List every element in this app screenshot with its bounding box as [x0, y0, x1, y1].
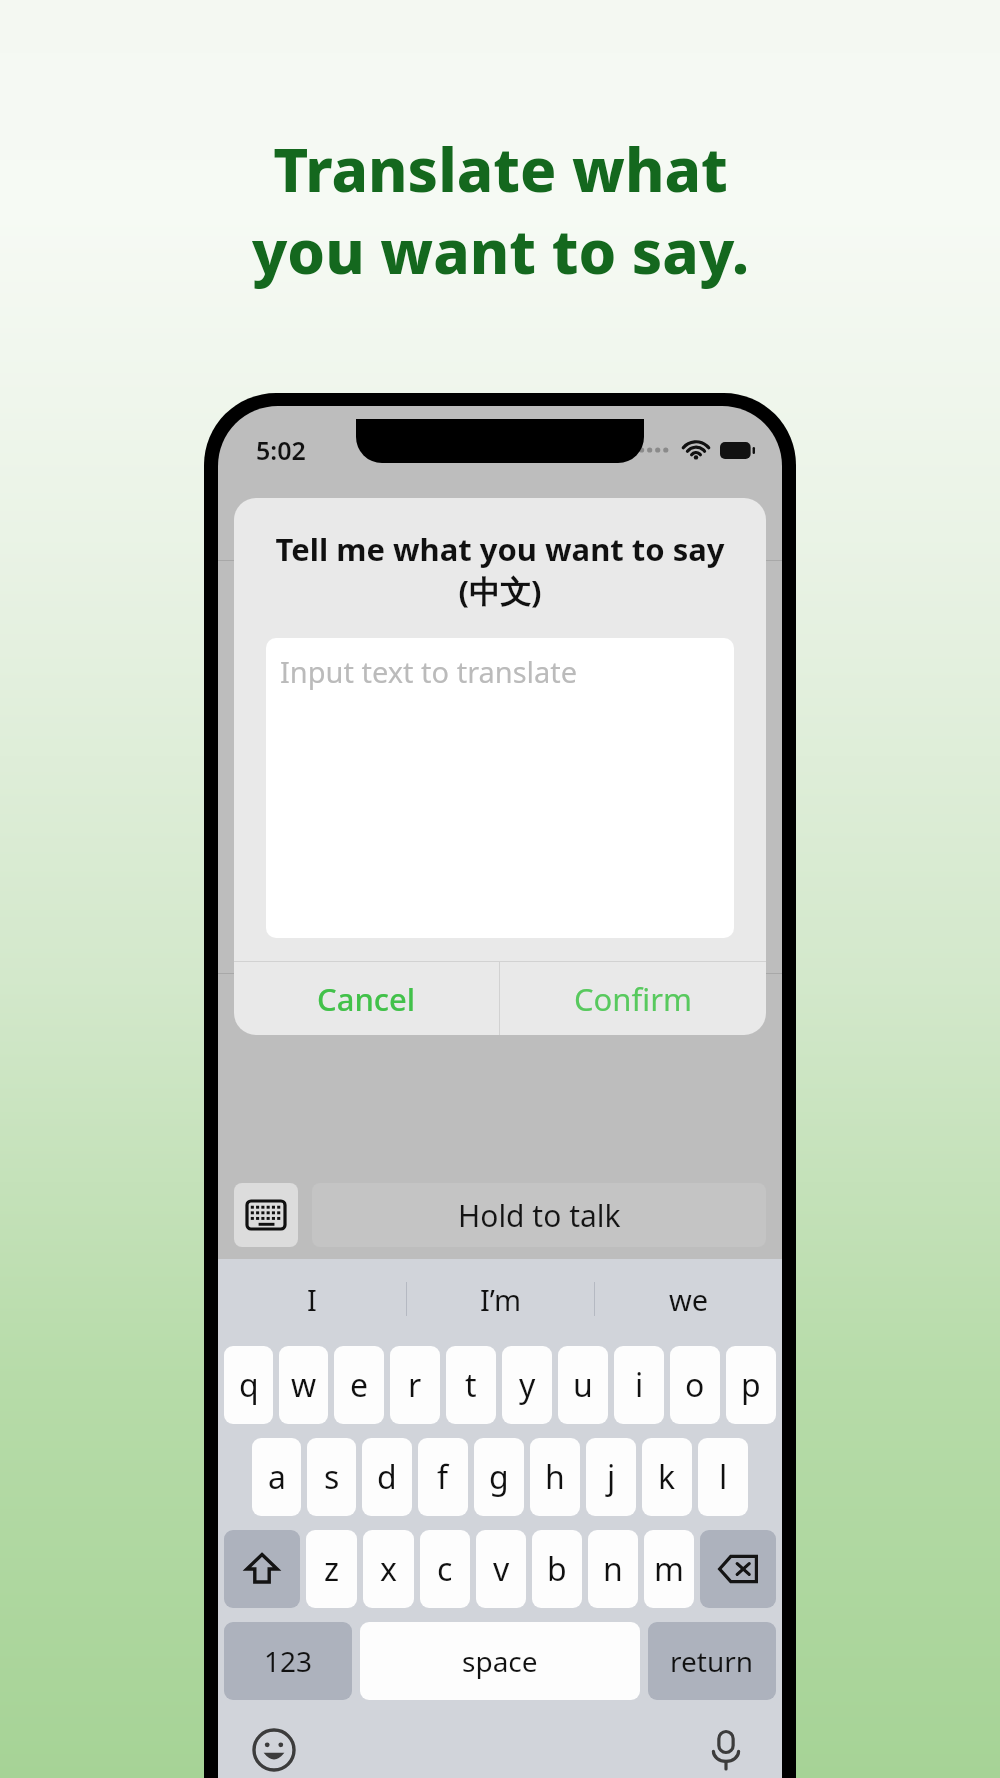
button[interactable]: v	[476, 1530, 526, 1608]
button[interactable]: Input text to translate	[266, 638, 734, 938]
staticText: 5:02	[256, 433, 306, 467]
staticText: return	[670, 1642, 754, 1680]
button[interactable]: m	[644, 1530, 694, 1608]
staticText: English	[262, 612, 361, 651]
button[interactable]: u	[558, 1346, 608, 1424]
button[interactable]: I’m	[407, 1259, 594, 1339]
button[interactable]: b	[532, 1530, 582, 1608]
staticText: c	[437, 1547, 453, 1591]
button[interactable]: f	[418, 1438, 468, 1516]
staticText: y	[519, 1363, 536, 1407]
button[interactable]: j	[586, 1438, 636, 1516]
staticText: m	[654, 1547, 684, 1591]
button[interactable]: n	[588, 1530, 638, 1608]
staticText: n	[603, 1547, 623, 1591]
button[interactable]: return	[648, 1622, 776, 1700]
button[interactable]: x	[363, 1530, 414, 1608]
staticText: Tell me what you want to say (中文)	[252, 528, 748, 612]
button[interactable]: g	[474, 1438, 524, 1516]
button[interactable]: l	[698, 1438, 748, 1516]
button[interactable]: d	[362, 1438, 412, 1516]
button[interactable]: y	[502, 1346, 552, 1424]
staticText: space	[462, 1642, 538, 1680]
staticText: e	[350, 1363, 369, 1407]
button[interactable]: Backspace	[700, 1530, 776, 1608]
button[interactable]: k	[642, 1438, 692, 1516]
staticText: Input text to translate	[280, 652, 578, 691]
staticText: x	[380, 1547, 397, 1591]
staticText: w	[291, 1363, 317, 1407]
button[interactable]: I	[218, 1259, 406, 1339]
staticText: Sure, let me help you. What do you need?	[240, 783, 535, 863]
staticText: o	[685, 1363, 705, 1407]
staticText: Confirm	[574, 978, 692, 1020]
button[interactable]: Play audio	[696, 791, 760, 855]
staticText: a	[268, 1455, 286, 1499]
staticText: t	[465, 1363, 477, 1407]
staticText: you want to say.	[252, 210, 749, 292]
staticText: s	[324, 1455, 340, 1499]
staticText: Translate what	[273, 128, 728, 210]
staticText: q	[239, 1363, 259, 1407]
button[interactable]: Practice	[570, 691, 760, 755]
staticText: Translation	[240, 885, 387, 923]
staticText: Cancel	[317, 978, 416, 1020]
staticText: d	[377, 1455, 397, 1499]
button[interactable]: Cancel	[234, 962, 499, 1035]
button[interactable]: s	[307, 1438, 356, 1516]
button[interactable]: Hold to talk	[312, 1183, 766, 1247]
button[interactable]: we	[595, 1259, 782, 1339]
button[interactable]: Emoji	[246, 1722, 302, 1778]
staticText: h	[545, 1455, 565, 1499]
staticText: u	[573, 1363, 593, 1407]
button[interactable]: z	[306, 1530, 357, 1608]
staticText: j	[607, 1455, 616, 1499]
button[interactable]: o	[670, 1346, 720, 1424]
staticText: b	[547, 1547, 567, 1591]
staticText: i	[635, 1363, 644, 1407]
staticText: f	[437, 1455, 449, 1499]
button[interactable]: p	[726, 1346, 776, 1424]
button[interactable]: Dictation	[698, 1722, 754, 1778]
staticText: we	[669, 1280, 709, 1319]
button[interactable]: 123	[224, 1622, 352, 1700]
staticText: v	[493, 1547, 510, 1591]
staticText: r	[408, 1363, 422, 1407]
staticText: I’m	[480, 1280, 522, 1319]
button[interactable]: w	[279, 1346, 328, 1424]
button[interactable]: space	[360, 1622, 640, 1700]
staticText: AI Voice Translator	[242, 498, 513, 540]
button[interactable]: a	[252, 1438, 301, 1516]
button[interactable]: c	[420, 1530, 470, 1608]
staticText: Hold to talk	[458, 1195, 621, 1236]
button[interactable]: Settings	[706, 492, 760, 546]
button[interactable]: Keyboard	[234, 1183, 298, 1247]
staticText: I	[307, 1280, 317, 1319]
staticText: g	[489, 1455, 509, 1499]
staticText: k	[658, 1455, 676, 1499]
button[interactable]: e	[334, 1346, 384, 1424]
button[interactable]: t	[446, 1346, 496, 1424]
button[interactable]: Expand	[690, 589, 760, 673]
staticText: p	[741, 1363, 761, 1407]
button[interactable]: Confirm	[500, 962, 766, 1035]
staticText: 123	[264, 1642, 313, 1680]
button[interactable]: English	[240, 589, 690, 673]
button[interactable]: i	[614, 1346, 664, 1424]
button[interactable]: r	[390, 1346, 440, 1424]
staticText: z	[324, 1547, 340, 1591]
button[interactable]: Shift	[224, 1530, 300, 1608]
staticText: l	[719, 1455, 728, 1499]
button[interactable]: h	[530, 1438, 580, 1516]
button[interactable]: q	[224, 1346, 273, 1424]
